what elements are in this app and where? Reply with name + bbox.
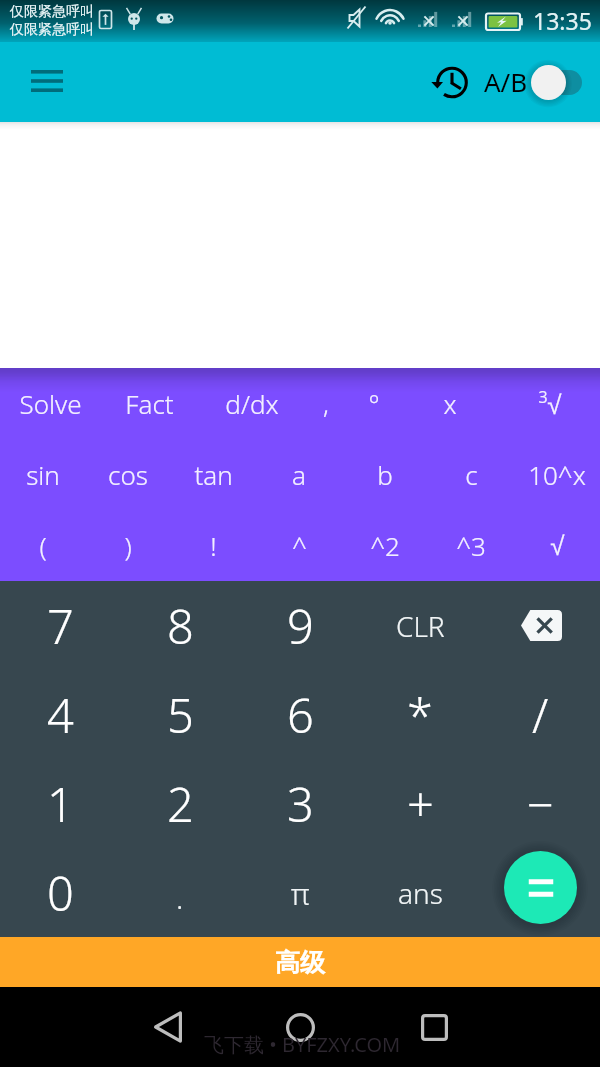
button[interactable]: π — [240, 848, 360, 937]
button[interactable]: 6 — [240, 670, 360, 759]
staticText: 8 — [167, 594, 194, 658]
staticText: ^3 — [456, 528, 486, 563]
staticText: tan — [194, 457, 233, 492]
staticText: 5 — [167, 683, 194, 747]
button[interactable]: 3 — [240, 759, 360, 848]
button[interactable]: ( — [0, 510, 85, 581]
button[interactable]: 10^x — [514, 439, 600, 510]
staticText: 9 — [287, 594, 314, 658]
button[interactable]: √ — [514, 510, 600, 581]
staticText: Fact — [125, 386, 174, 421]
staticText: + — [407, 772, 434, 836]
staticText: a — [292, 457, 306, 492]
staticText: 7 — [47, 594, 74, 658]
button[interactable]: ^ — [256, 510, 342, 581]
staticText: b — [377, 457, 393, 492]
staticText: 13:35 — [533, 5, 592, 36]
staticText: . — [176, 877, 184, 918]
button[interactable]: 高级 — [0, 937, 600, 987]
button[interactable]: x — [401, 368, 499, 439]
button[interactable]: ) — [85, 510, 170, 581]
button[interactable]: Toggle A/B — [526, 61, 586, 103]
other: Backspace — [521, 610, 562, 641]
staticText: 4 — [47, 683, 74, 747]
button[interactable] — [480, 848, 600, 937]
staticText: / — [532, 683, 549, 747]
button[interactable]: Recents — [404, 997, 464, 1057]
staticText: 高级 — [275, 947, 325, 978]
button[interactable]: 7 — [0, 581, 120, 670]
button[interactable]: ° — [347, 368, 401, 439]
button[interactable]: Menu — [23, 58, 71, 106]
staticText: cos — [108, 457, 148, 492]
staticText: ^ — [292, 528, 307, 563]
button[interactable]: Back — [138, 997, 198, 1057]
staticText: c — [465, 457, 478, 492]
button[interactable]: 1 — [0, 759, 120, 848]
button[interactable]: 0 — [0, 848, 120, 937]
button[interactable]: CLR — [360, 581, 480, 670]
button[interactable]: a — [256, 439, 342, 510]
button[interactable]: ! — [170, 510, 256, 581]
staticText: 飞下载 • BYFZXY.COM — [204, 1031, 401, 1058]
button[interactable]: ^2 — [342, 510, 428, 581]
button[interactable]: ³√ — [499, 368, 600, 439]
button[interactable]: 8 — [120, 581, 240, 670]
staticText: 10^x — [528, 457, 586, 492]
button[interactable]: 2 — [120, 759, 240, 848]
button[interactable]: Fact — [101, 368, 198, 439]
button[interactable]: + — [360, 759, 480, 848]
staticText: ! — [210, 528, 217, 563]
button[interactable]: ans — [360, 848, 480, 937]
button[interactable]: , — [305, 368, 347, 439]
button[interactable]: Solve — [0, 368, 101, 439]
staticText: sin — [26, 457, 60, 492]
button[interactable]: / — [480, 670, 600, 759]
button[interactable]: Home — [270, 997, 330, 1057]
button[interactable]: d/dx — [198, 368, 305, 439]
button[interactable]: ^3 — [428, 510, 514, 581]
staticText: ans — [398, 874, 443, 912]
button[interactable]: History — [429, 60, 474, 105]
staticText: 仅限紧急呼叫 — [10, 21, 94, 39]
button[interactable]: 4 — [0, 670, 120, 759]
button[interactable]: b — [342, 439, 428, 510]
button[interactable]: . — [120, 848, 240, 937]
staticText: ( — [39, 528, 47, 563]
staticText: 0 — [47, 861, 74, 925]
staticText: * — [407, 683, 433, 747]
button[interactable]: 9 — [240, 581, 360, 670]
button[interactable]: * — [360, 670, 480, 759]
staticText: 3 — [287, 772, 314, 836]
staticText: Solve — [19, 386, 82, 421]
button[interactable]: Backspace — [480, 581, 600, 670]
button[interactable]: sin — [0, 439, 85, 510]
staticText: ) — [124, 528, 132, 563]
staticText: 2 — [167, 772, 194, 836]
button[interactable]: cos — [85, 439, 170, 510]
button[interactable]: tan — [170, 439, 256, 510]
staticText: 仅限紧急呼叫 — [10, 3, 94, 21]
staticText: ^2 — [370, 528, 400, 563]
staticText: ³√ — [538, 386, 562, 421]
button[interactable]: Equals — [504, 851, 577, 924]
staticText: , — [323, 386, 329, 421]
button[interactable]: − — [480, 759, 600, 848]
staticText: d/dx — [225, 386, 279, 421]
staticText: − — [527, 772, 554, 836]
button[interactable]: 5 — [120, 670, 240, 759]
staticText: CLR — [396, 607, 445, 645]
staticText: A/B — [484, 64, 528, 99]
staticText: √ — [550, 531, 565, 560]
button[interactable]: c — [428, 439, 514, 510]
staticText: 6 — [287, 683, 314, 747]
staticText: 1 — [47, 772, 74, 836]
staticText: ° — [368, 386, 380, 421]
staticText: π — [291, 873, 310, 914]
staticText: x — [443, 386, 457, 421]
